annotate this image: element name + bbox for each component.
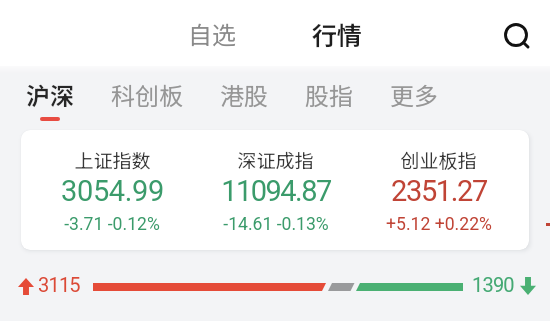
staticText: 1390 xyxy=(472,273,514,296)
staticText: 沪深 xyxy=(26,77,74,112)
button[interactable]: 科创板 xyxy=(102,71,192,118)
button[interactable]: 自选 xyxy=(182,10,242,57)
button[interactable]: 上证指数 xyxy=(21,130,529,250)
staticText: 更多 xyxy=(390,77,438,112)
staticText: 创业板指 xyxy=(400,146,477,174)
staticText: 科创板 xyxy=(111,77,183,112)
staticText: 行情 xyxy=(312,16,363,52)
staticText: +5.12 +0.22% xyxy=(386,214,492,235)
staticText: 上证指数 xyxy=(74,146,151,174)
button[interactable]: 1390 xyxy=(468,272,540,300)
staticText: 2351.27 xyxy=(391,174,487,208)
staticText: 深证成指 xyxy=(237,146,314,174)
button[interactable]: 更多 xyxy=(381,71,447,118)
staticText: 3115 xyxy=(38,273,80,296)
staticText: 港股 xyxy=(220,77,268,112)
staticText: -14.61 -0.13% xyxy=(223,214,329,235)
button[interactable]: 行情 xyxy=(306,10,369,58)
staticText: 自选 xyxy=(188,16,236,51)
button[interactable]: 港股 xyxy=(211,71,277,118)
staticText: 3054.99 xyxy=(61,174,164,208)
staticText: 股指 xyxy=(305,77,353,112)
button[interactable]: 沪深 xyxy=(17,71,83,118)
button[interactable]: 股指 xyxy=(296,71,362,118)
button[interactable]: Search xyxy=(494,13,538,57)
staticText: -3.71 -0.12% xyxy=(64,214,160,235)
button[interactable]: 3115 xyxy=(14,272,94,300)
staticText: 11094.87 xyxy=(221,174,331,208)
